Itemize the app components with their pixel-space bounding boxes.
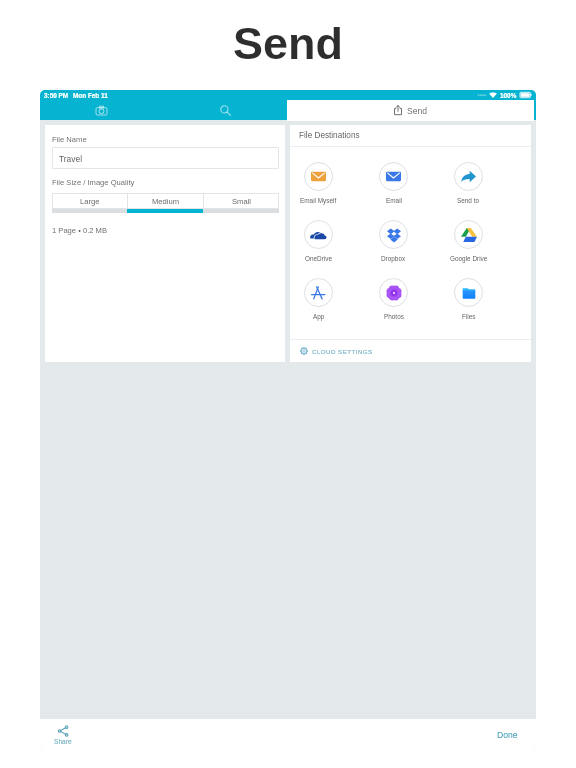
staticText: Send to bbox=[457, 197, 480, 204]
staticText: Google Drive bbox=[450, 255, 488, 262]
staticText: Email bbox=[386, 197, 402, 204]
staticText: Small bbox=[232, 197, 251, 205]
staticText: OneDrive bbox=[305, 255, 332, 262]
button[interactable]: CLOUD SETTINGS bbox=[290, 340, 531, 362]
staticText: Send bbox=[233, 18, 344, 68]
staticText: Dropbox bbox=[381, 255, 406, 262]
staticText: Large bbox=[80, 197, 100, 205]
staticText: File Size / Image Quality bbox=[52, 178, 135, 186]
staticText: Email Myself bbox=[300, 197, 337, 204]
button[interactable]: OneDrive bbox=[281, 220, 356, 278]
staticText: File Destinations bbox=[299, 131, 360, 140]
staticText: Medium bbox=[152, 197, 180, 205]
staticText: Mon Feb 11 bbox=[73, 92, 108, 99]
staticText: 1 Page • 0.2 MB bbox=[52, 226, 108, 234]
staticText: 100% bbox=[500, 92, 517, 99]
button[interactable]: Large bbox=[52, 193, 127, 209]
staticText: 3:50 PM bbox=[44, 92, 69, 99]
button[interactable]: Small bbox=[204, 193, 279, 209]
button[interactable]: Photos bbox=[356, 278, 431, 336]
button[interactable]: Share bbox=[48, 723, 78, 747]
button[interactable]: Send bbox=[287, 100, 534, 120]
staticText: Done bbox=[497, 730, 518, 740]
staticText: CLOUD SETTINGS bbox=[312, 348, 373, 355]
button[interactable]: Google Drive bbox=[431, 220, 506, 278]
staticText: App bbox=[313, 313, 325, 320]
button[interactable]: Email bbox=[356, 162, 431, 220]
button[interactable]: Send to bbox=[431, 162, 506, 220]
button[interactable]: Done bbox=[491, 726, 524, 744]
button[interactable]: Dropbox bbox=[356, 220, 431, 278]
staticText: Photos bbox=[384, 313, 404, 320]
staticText: Send bbox=[407, 106, 428, 116]
button[interactable]: Camera bbox=[89, 103, 113, 118]
staticText: File Name bbox=[52, 135, 87, 143]
button[interactable]: Email Myself bbox=[281, 162, 356, 220]
button[interactable]: Files bbox=[431, 278, 506, 336]
button[interactable]: Medium bbox=[128, 193, 203, 209]
staticText: Travel bbox=[59, 154, 83, 163]
button[interactable]: Search bbox=[213, 103, 237, 118]
staticText: Share bbox=[54, 738, 72, 745]
button[interactable]: App bbox=[281, 278, 356, 336]
staticText: Files bbox=[462, 313, 476, 320]
